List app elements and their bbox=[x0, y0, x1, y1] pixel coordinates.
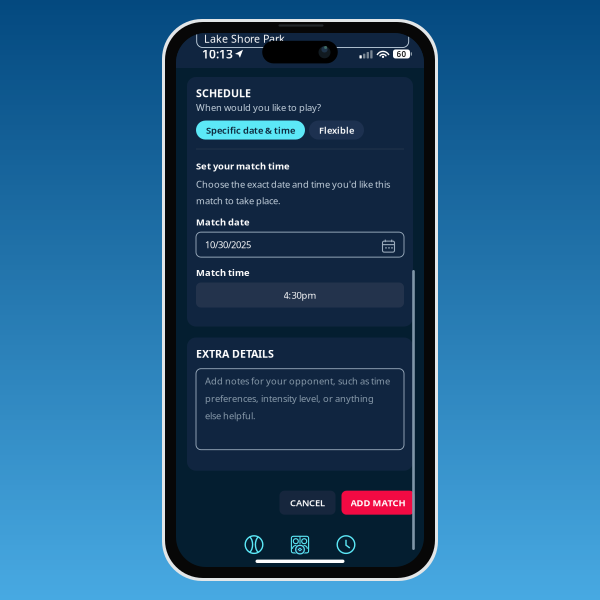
staticText: ADD MATCH bbox=[350, 496, 405, 509]
staticText: Match date bbox=[196, 216, 250, 228]
button[interactable]: Flexible bbox=[309, 121, 364, 140]
staticText: Set your match time bbox=[196, 160, 290, 172]
button[interactable]: Specific date & time bbox=[196, 121, 305, 140]
button[interactable]: 4:30pm bbox=[196, 282, 404, 307]
staticText: else helpful. bbox=[205, 409, 256, 422]
staticText: Choose the exact date and time you'd lik… bbox=[196, 178, 390, 207]
staticText: 10/30/2025 bbox=[205, 238, 251, 251]
button[interactable]: CANCEL bbox=[279, 491, 335, 515]
staticText: EXTRA DETAILS bbox=[196, 346, 274, 361]
button[interactable]: Matches bbox=[288, 534, 312, 556]
button[interactable]: Play bbox=[242, 534, 266, 556]
staticText: SCHEDULE bbox=[196, 86, 251, 100]
staticText: Match time bbox=[196, 266, 250, 278]
staticText: 4:30pm bbox=[283, 289, 316, 301]
button[interactable]: 10/30/2025 bbox=[196, 232, 404, 257]
staticText: 10:13 bbox=[202, 46, 233, 62]
staticText: When would you like to play? bbox=[196, 101, 321, 114]
staticText: CANCEL bbox=[290, 496, 325, 509]
staticText: Lake Shore Park bbox=[204, 31, 285, 46]
staticText: 60 bbox=[396, 49, 406, 59]
staticText: Specific date & time bbox=[206, 124, 295, 136]
button[interactable]: ADD MATCH bbox=[341, 491, 414, 515]
button[interactable]: History bbox=[334, 534, 358, 556]
staticText: preferences, intensity level, or anythin… bbox=[205, 392, 374, 404]
staticText: Flexible bbox=[319, 124, 354, 136]
staticText: Add notes for your opponent, such as tim… bbox=[205, 375, 390, 387]
